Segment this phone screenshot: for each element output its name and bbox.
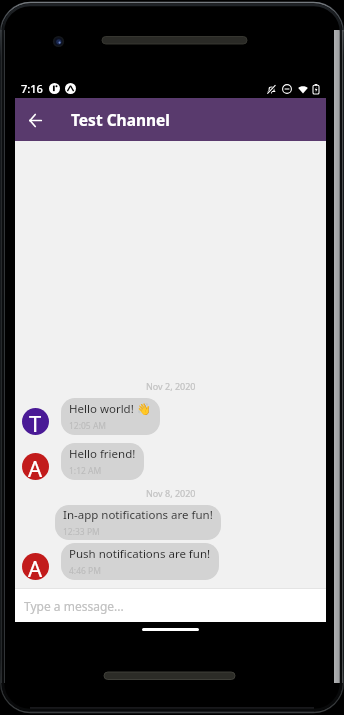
staticText: Nov 8, 2020: [146, 487, 196, 499]
staticText: 12:05 AM: [69, 420, 107, 432]
staticText: 7:16: [21, 81, 43, 96]
staticText: In-app notifications are fun!: [63, 507, 213, 523]
staticText: A: [28, 453, 43, 480]
staticText: 4:46 PM: [69, 565, 101, 577]
button[interactable]: Push notifications are fun!: [61, 543, 219, 580]
staticText: Hello friend!: [69, 446, 136, 462]
staticText: Hello world! 👋: [69, 401, 152, 417]
button[interactable]: Home: [142, 628, 199, 631]
button[interactable]: Back: [20, 105, 50, 135]
staticText: T: [29, 408, 42, 435]
staticText: A: [28, 553, 43, 580]
button[interactable]: Hello world! 👋: [61, 398, 160, 435]
button[interactable]: In-app notifications are fun!: [55, 505, 221, 540]
staticText: Test Channel: [71, 109, 170, 130]
button[interactable]: Hello friend!: [61, 443, 144, 480]
staticText: Type a message...: [24, 598, 124, 614]
staticText: 12:33 PM: [63, 526, 100, 538]
staticText: 1:12 AM: [69, 465, 102, 477]
button[interactable]: Type a message...: [15, 589, 326, 622]
staticText: Push notifications are fun!: [69, 546, 211, 562]
staticText: Nov 2, 2020: [146, 380, 196, 392]
